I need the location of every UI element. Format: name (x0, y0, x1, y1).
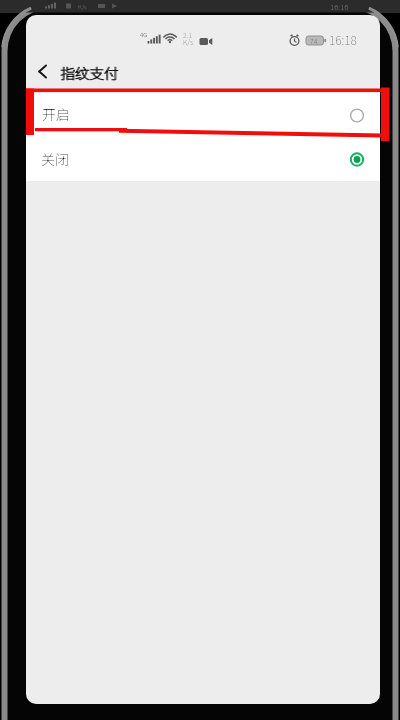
staticText: 关闭 (41, 149, 69, 169)
staticText: 开启 (42, 104, 70, 124)
staticText: 开启 (42, 104, 70, 124)
button[interactable] (30, 56, 60, 86)
staticText: 指纹支付 (61, 62, 119, 83)
staticText: K/s (78, 2, 87, 11)
staticText: 16:16 (330, 1, 349, 13)
staticText: 4G (140, 30, 148, 39)
staticText: 关闭 (41, 149, 69, 169)
staticText: 16:18 (329, 31, 357, 48)
staticText: 2.1 (183, 30, 192, 40)
staticText: K/s (183, 37, 194, 47)
staticText: 74 (310, 36, 318, 46)
button[interactable] (26, 137, 380, 181)
staticText: 指纹支付 (60, 62, 118, 83)
button[interactable] (26, 91, 380, 136)
